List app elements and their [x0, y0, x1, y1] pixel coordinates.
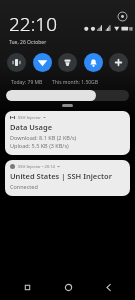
staticText: United States | SSH Injector [10, 171, 112, 181]
button[interactable]: Home [55, 274, 81, 300]
button[interactable] [6, 90, 129, 101]
staticText: Connected [10, 183, 38, 190]
button[interactable]: Recents [14, 274, 40, 300]
staticText: Upload: 5.5 KB (3 KB/s) [10, 142, 69, 149]
button[interactable]: Settings [117, 11, 128, 22]
staticText: SSH Injector • 20:14 [18, 164, 55, 169]
button[interactable]: SSH Injector • 20:14 [5, 160, 130, 196]
button[interactable]: Flashlight [58, 53, 77, 72]
staticText: Tue, 26 October [9, 39, 47, 46]
button[interactable]: SSH Injector [5, 111, 130, 155]
staticText: Data Usage [10, 122, 53, 132]
staticText: Today: 79 MB [11, 79, 43, 86]
button[interactable]: Add tile [109, 53, 128, 72]
button[interactable]: Do not disturb [84, 53, 103, 72]
button[interactable]: Back [95, 274, 121, 300]
staticText: 22:10 [9, 11, 58, 37]
button[interactable]: Sound mode [7, 53, 26, 72]
staticText: Download: 8.1 KB (2 KB/s) [10, 134, 77, 141]
staticText: SSH Injector [18, 115, 41, 120]
staticText: This month: 1.50GB [52, 79, 98, 86]
button[interactable]: Wi-Fi [33, 53, 52, 72]
